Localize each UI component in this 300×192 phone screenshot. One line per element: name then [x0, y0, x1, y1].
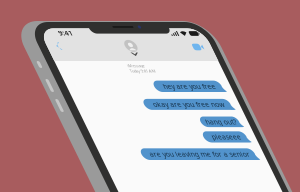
button[interactable]: FaceTime video call: [167, 21, 181, 31]
button[interactable]: are you leaving me for a senior: [65, 127, 181, 139]
button[interactable]: okay are you free now: [92, 78, 181, 89]
staticText: are you leaving me for a senior: [73, 129, 173, 138]
staticText: hang out?: [145, 96, 176, 105]
button[interactable]: hey are you free: [111, 60, 181, 71]
staticText: hey are you free: [120, 61, 172, 70]
button[interactable]: hang out?: [140, 95, 181, 106]
staticText: okay are you free now: [101, 79, 172, 88]
button[interactable]: Back: [29, 18, 40, 32]
button[interactable]: Contact details: [101, 19, 113, 35]
